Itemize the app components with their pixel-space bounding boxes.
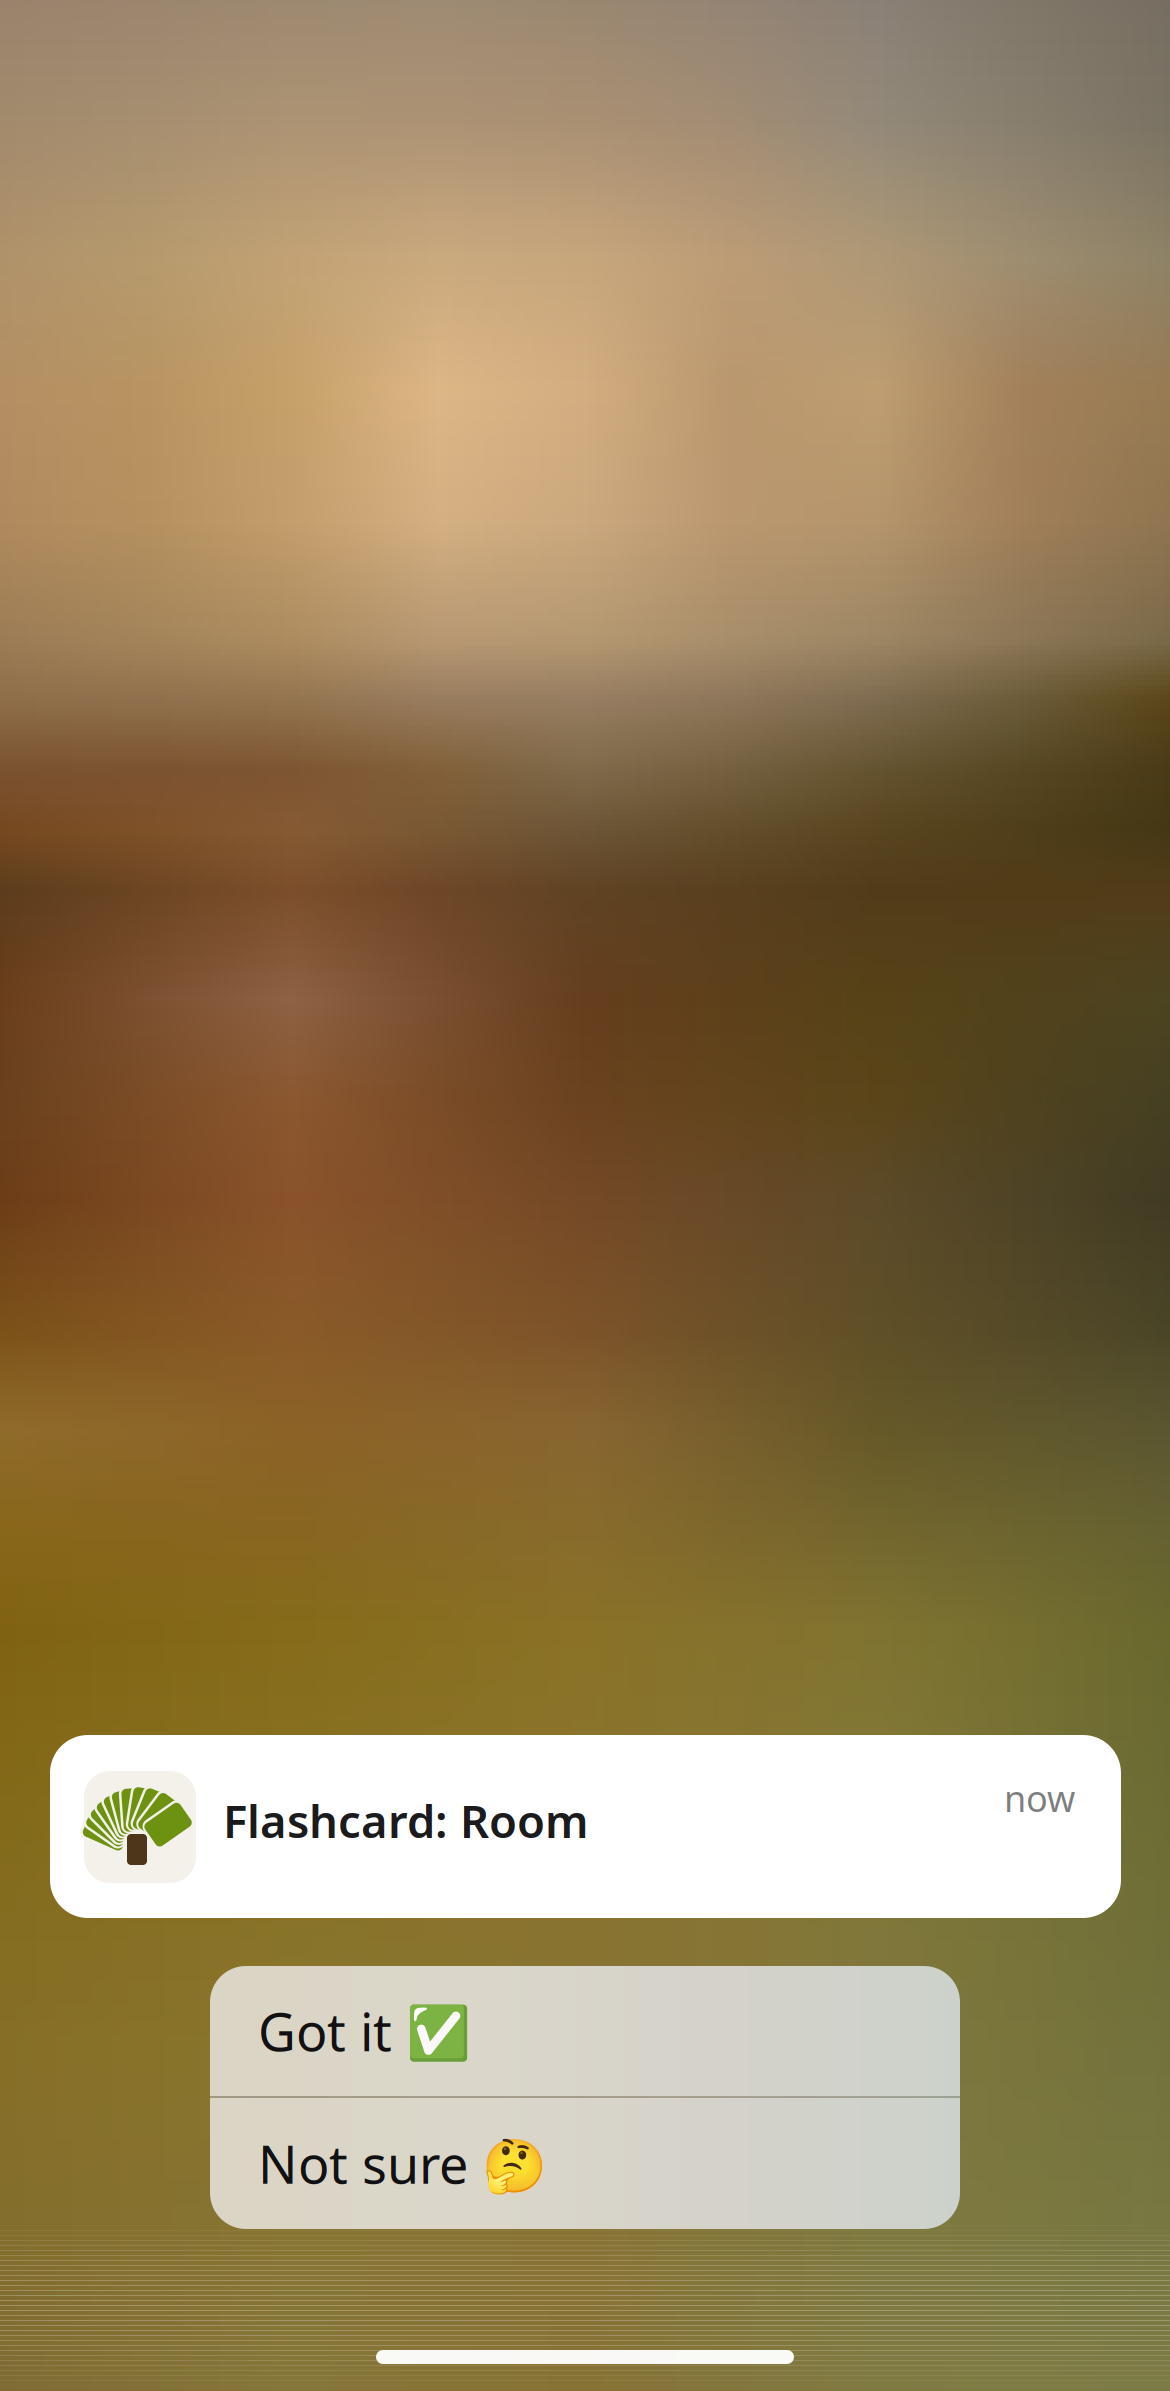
staticText: Flashcard: Room <box>223 1790 589 1851</box>
button[interactable]: Flashcard: Room <box>50 1735 1121 1918</box>
staticText: Got it ✅ <box>258 1996 471 2066</box>
button[interactable]: Not sure 🤔 <box>210 2098 960 2229</box>
staticText: Not sure 🤔 <box>258 2129 547 2198</box>
staticText: now <box>1004 1774 1075 1822</box>
button[interactable]: Got it ✅ <box>210 1966 960 2096</box>
